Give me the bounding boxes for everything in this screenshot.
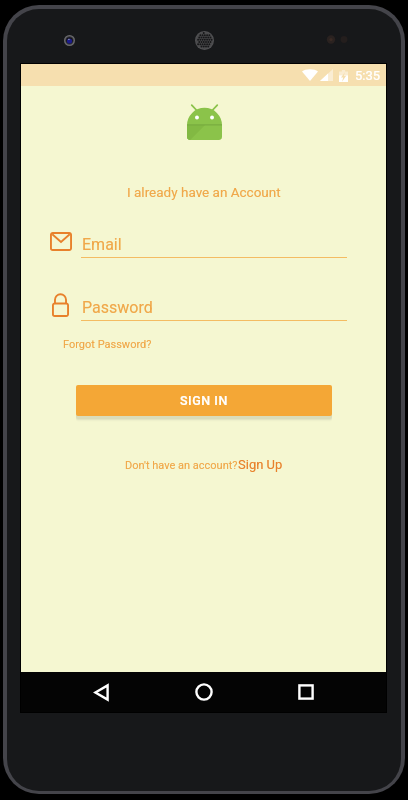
button[interactable]: Home — [181, 672, 227, 712]
button[interactable]: Email — [45, 228, 372, 262]
staticText: Email — [82, 235, 122, 254]
button[interactable]: Password — [45, 290, 372, 326]
button[interactable]: Don't have an account? — [125, 457, 283, 472]
staticText: I already have an Account — [127, 184, 281, 200]
staticText: Password — [82, 298, 153, 317]
button[interactable]: Forgot Password? — [61, 336, 154, 353]
staticText: Sign Up — [238, 457, 283, 472]
button[interactable]: Recent apps — [283, 672, 329, 712]
staticText: 5:35 — [355, 68, 381, 83]
button[interactable]: SIGN IN — [76, 385, 332, 416]
button[interactable]: Back — [78, 672, 124, 712]
staticText: Don't have an account? — [125, 459, 238, 472]
staticText: Forgot Password? — [63, 338, 152, 351]
staticText: SIGN IN — [180, 393, 228, 408]
